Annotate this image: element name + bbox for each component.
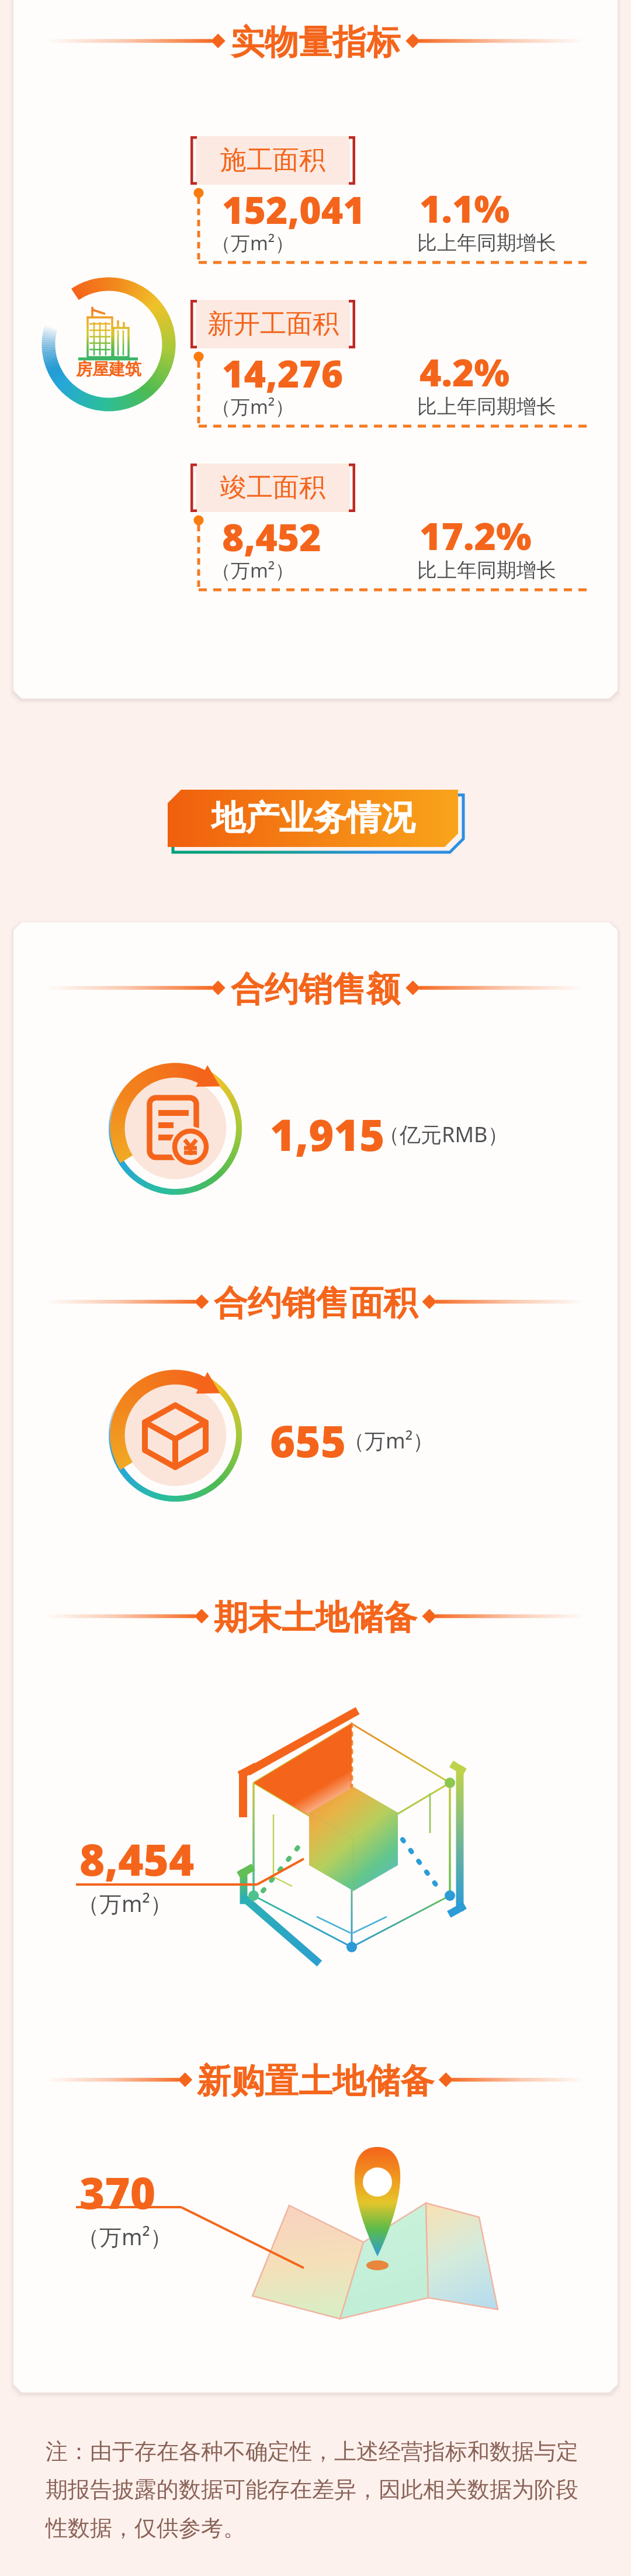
staticText: 施工面积 [220, 144, 325, 177]
staticText: 655 [270, 1411, 346, 1470]
staticText: （万m²） [212, 230, 294, 256]
staticText: 370 [79, 2163, 156, 2222]
staticText: 地产业务情况 [212, 797, 415, 839]
staticText: 1,915 [270, 1105, 385, 1164]
staticText: 竣工面积 [220, 471, 325, 504]
staticText: 比上年同期增长 [417, 230, 556, 255]
staticText: （万m²） [77, 1888, 172, 1918]
staticText: 14,276 [222, 348, 344, 399]
staticText: 新购置土地储备 [197, 2060, 434, 2103]
staticText: （亿元RMB） [379, 1120, 509, 1149]
staticText: 152,041 [222, 184, 365, 235]
staticText: （万m²） [212, 557, 294, 583]
staticText: 比上年同期增长 [417, 394, 556, 419]
staticText: （万m²） [77, 2221, 172, 2252]
staticText: 8,452 [222, 511, 321, 562]
staticText: 比上年同期增长 [417, 558, 556, 583]
staticText: 4.2% [419, 347, 510, 397]
staticText: 合约销售额 [231, 968, 400, 1011]
staticText: 合约销售面积 [214, 1282, 417, 1325]
staticText: 实物量指标 [231, 21, 400, 64]
staticText: 8,454 [79, 1830, 195, 1889]
staticText: 17.2% [419, 510, 532, 561]
staticText: 1.1% [419, 183, 510, 234]
staticText: 房屋建筑 [76, 359, 141, 379]
staticText: 新开工面积 [207, 307, 339, 341]
staticText: （万m²） [212, 393, 294, 420]
staticText: 期末土地储备 [214, 1596, 417, 1639]
staticText: （万m²） [344, 1426, 434, 1455]
staticText: 注：由于存在各种不确定性，上述经营指标和数据与定期报告披露的数据可能存在差异，因… [46, 2437, 589, 2543]
